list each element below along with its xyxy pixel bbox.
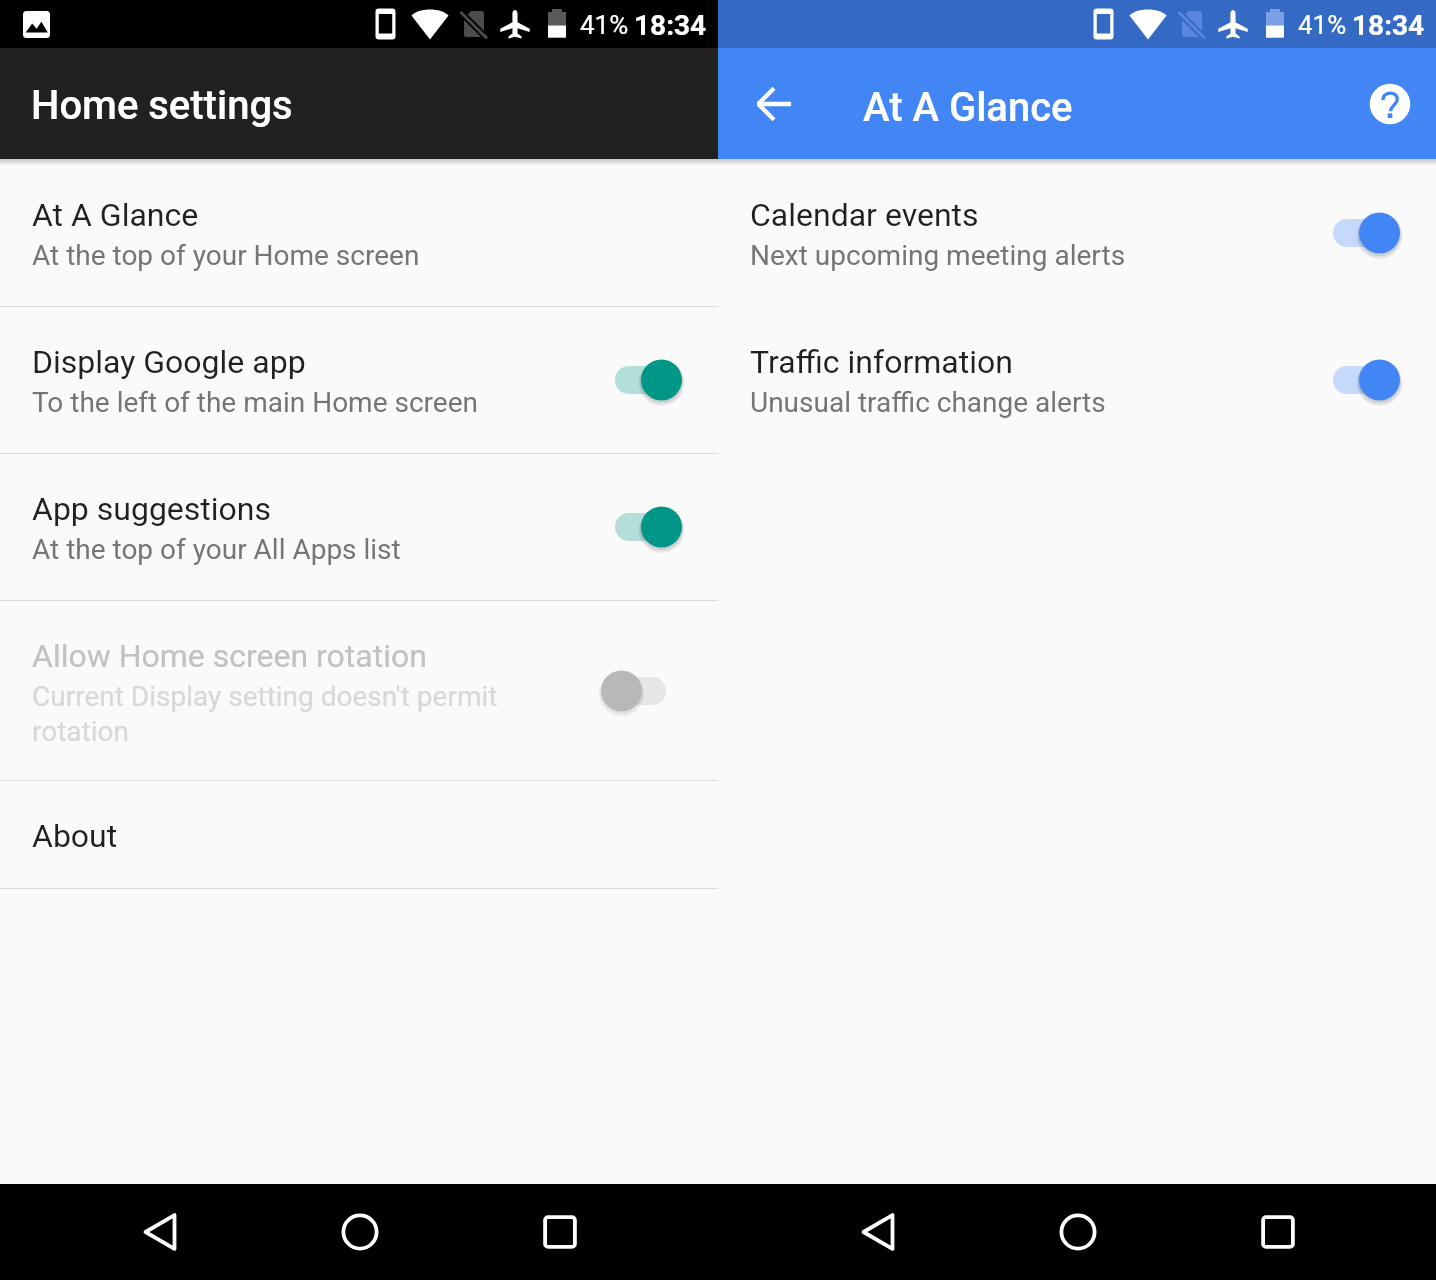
- button[interactable]: Toggle Allow Home screen rotation: [594, 659, 690, 723]
- staticText: Next upcoming meeting alerts: [750, 239, 1126, 272]
- staticText: Current Display setting doesn't permit r…: [32, 680, 537, 748]
- staticText: 41%: [580, 10, 629, 40]
- staticText: 18:34: [634, 9, 707, 42]
- button[interactable]: Traffic information: [718, 307, 1436, 454]
- button[interactable]: Toggle App suggestions: [594, 495, 690, 559]
- staticText: Unusual traffic change alerts: [750, 386, 1106, 419]
- staticText: About: [32, 817, 118, 855]
- staticText: At A Glance: [32, 196, 199, 234]
- button[interactable]: Back: [752, 76, 808, 132]
- button[interactable]: About: [0, 781, 718, 889]
- button[interactable]: App suggestions: [0, 454, 718, 601]
- staticText: Allow Home screen rotation: [32, 637, 427, 675]
- staticText: At A Glance: [863, 84, 1073, 131]
- button[interactable]: Toggle Traffic information: [1312, 348, 1408, 412]
- button[interactable]: At A Glance: [0, 160, 718, 307]
- button[interactable]: Allow Home screen rotation: [0, 601, 718, 781]
- staticText: At the top of your All Apps list: [32, 533, 401, 566]
- button[interactable]: Back: [830, 1184, 926, 1280]
- button[interactable]: Home: [312, 1184, 408, 1280]
- button[interactable]: Recents: [512, 1184, 608, 1280]
- button[interactable]: Display Google app: [0, 307, 718, 454]
- button[interactable]: Home: [1030, 1184, 1126, 1280]
- button[interactable]: Toggle Calendar events: [1312, 201, 1408, 265]
- staticText: Calendar events: [750, 196, 979, 234]
- staticText: App suggestions: [32, 490, 272, 528]
- staticText: Home settings: [31, 82, 293, 129]
- button[interactable]: Help: [1362, 76, 1418, 132]
- staticText: 18:34: [1352, 9, 1425, 42]
- staticText: Display Google app: [32, 343, 306, 381]
- button[interactable]: Recents: [1230, 1184, 1326, 1280]
- staticText: To the left of the main Home screen: [32, 386, 478, 419]
- staticText: Traffic information: [750, 343, 1013, 381]
- staticText: 41%: [1298, 10, 1347, 40]
- staticText: At the top of your Home screen: [32, 239, 420, 272]
- button[interactable]: Back: [112, 1184, 208, 1280]
- button[interactable]: Calendar events: [718, 160, 1436, 307]
- button[interactable]: Toggle Display Google app: [594, 348, 690, 412]
